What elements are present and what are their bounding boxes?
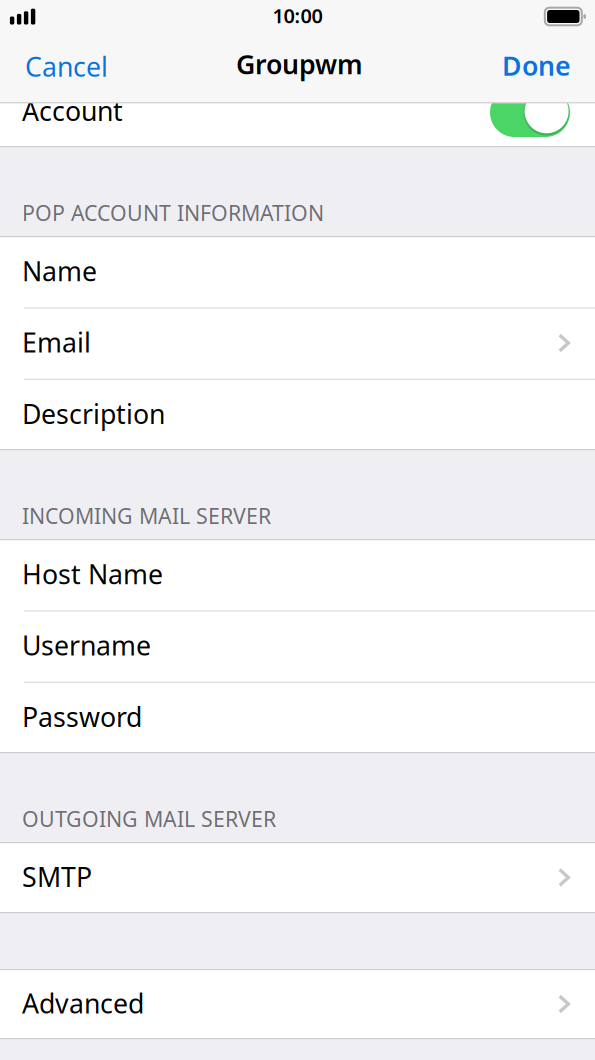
staticText: OUTGOING MAIL SERVER xyxy=(22,805,276,833)
button[interactable]: Account enabled xyxy=(0,76,595,147)
staticText: Done xyxy=(502,48,571,83)
button[interactable]: Done xyxy=(488,40,595,100)
staticText: Cancel xyxy=(25,49,108,84)
button[interactable]: Name xyxy=(0,236,595,307)
button[interactable]: Advanced xyxy=(0,969,595,1039)
staticText: Name xyxy=(22,253,97,289)
staticText: Description xyxy=(22,396,165,431)
button[interactable]: Host Name xyxy=(0,539,595,610)
staticText: 10:00 xyxy=(272,2,322,29)
button[interactable]: Username xyxy=(0,610,595,682)
staticText: Account xyxy=(22,93,123,128)
button[interactable]: Cancel xyxy=(0,40,122,100)
button[interactable]: Description xyxy=(0,379,595,450)
button[interactable]: Password xyxy=(0,682,595,753)
button[interactable]: Email xyxy=(0,307,595,379)
staticText: INCOMING MAIL SERVER xyxy=(22,502,271,530)
staticText: Advanced xyxy=(22,985,144,1021)
staticText: SMTP xyxy=(22,859,92,894)
staticText: Email xyxy=(22,324,91,360)
staticText: Username xyxy=(22,627,151,663)
staticText: POP ACCOUNT INFORMATION xyxy=(22,199,324,227)
staticText: Password xyxy=(22,699,142,734)
staticText: Groupwm xyxy=(236,46,363,82)
button[interactable]: SMTP xyxy=(0,842,595,913)
staticText: Host Name xyxy=(22,556,163,592)
